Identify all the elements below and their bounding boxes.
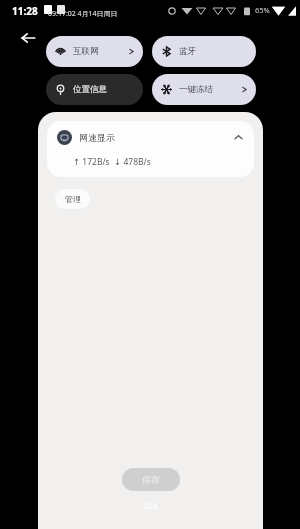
staticText: 2/4 <box>144 500 158 512</box>
staticText: ↑ 172B/s ↓ 478B/s <box>73 156 151 168</box>
button[interactable]: 蓝牙 <box>152 36 256 67</box>
staticText: 网速显示 <box>79 132 115 143</box>
staticText: 09:17:02 4月14日周日 <box>48 9 118 19</box>
staticText: 11:28 <box>12 4 38 18</box>
button[interactable]: 互联网 <box>46 36 143 67</box>
staticText: 互联网 <box>73 46 99 57</box>
other: Collapse <box>233 132 244 143</box>
staticText: 位置信息 <box>73 84 107 95</box>
staticText: 一键冻结 <box>179 84 213 95</box>
button[interactable]: 管理 <box>55 189 90 209</box>
button[interactable]: Back <box>14 24 42 52</box>
staticText: 65% <box>255 5 270 15</box>
button[interactable]: 网速显示 <box>47 121 254 177</box>
staticText: 蓝牙 <box>179 46 196 57</box>
button[interactable]: 保存 <box>122 468 180 491</box>
staticText: 保存 <box>142 474 160 485</box>
button[interactable]: 位置信息 <box>46 74 143 105</box>
button[interactable]: 一键冻结 <box>152 74 256 105</box>
staticText: 管理 <box>65 194 81 204</box>
